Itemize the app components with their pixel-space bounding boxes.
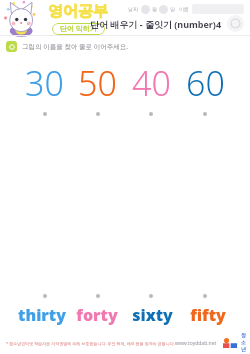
button[interactable]: 50 (71, 60, 124, 106)
staticText: 그림의 이름을 찾아 줄로 이어주세요. (22, 42, 129, 51)
staticText: sixty (132, 304, 173, 326)
staticText: 단어 익히기 (60, 24, 97, 34)
staticText: www.toyddab.net (175, 340, 217, 347)
staticText: 단어 배우기 - 줄잇기 (number)4 (90, 18, 222, 30)
staticText: 일 (170, 6, 175, 12)
staticText: 이름 (179, 6, 189, 12)
button[interactable]: 30 (18, 60, 71, 106)
staticText: forty (76, 304, 118, 326)
button[interactable]: 60 (178, 60, 232, 106)
staticText: 40 (132, 60, 171, 106)
button[interactable]: 40 (124, 60, 178, 106)
button[interactable]: fifty (180, 304, 236, 326)
staticText: thirty (18, 304, 66, 326)
button[interactable]: sixty (124, 304, 180, 326)
button[interactable]: Print (227, 15, 244, 32)
button[interactable]: thirty (14, 304, 69, 326)
staticText: 월 (152, 6, 157, 12)
staticText: 청소년 (241, 332, 244, 353)
button[interactable]: 단어 익히기 (60, 24, 97, 34)
staticText: * 청소년인터넷 학습자료 저작권법에 의해 보호받습니다. 무단 복제, 배포… (6, 341, 175, 346)
staticText: 날짜 (128, 6, 138, 12)
staticText: 30 (25, 60, 64, 106)
staticText: fifty (190, 304, 226, 326)
staticText: 60 (186, 60, 225, 106)
staticText: 영어공부 (48, 2, 108, 21)
staticText: 50 (78, 60, 117, 106)
button[interactable]: forty (69, 304, 124, 326)
